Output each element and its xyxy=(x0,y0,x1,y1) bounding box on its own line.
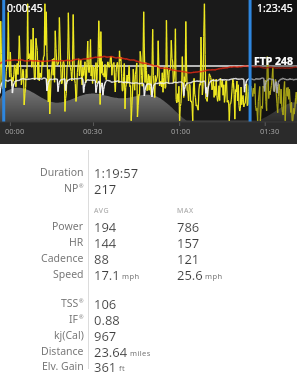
staticText: 88 xyxy=(94,250,109,266)
staticText: Power xyxy=(52,219,84,233)
staticText: 121 xyxy=(177,250,200,266)
button[interactable]: Speed xyxy=(0,266,297,282)
staticText: 00:00 xyxy=(5,126,25,136)
button[interactable]: Duration xyxy=(0,164,297,180)
staticText: 1:19:57 xyxy=(94,164,139,180)
staticText: 157 xyxy=(177,234,200,250)
staticText: 361 xyxy=(94,358,117,374)
button[interactable]: Cadence xyxy=(0,250,297,266)
staticText: mph xyxy=(205,271,223,281)
staticText: IF xyxy=(69,312,79,326)
staticText: 23.64 xyxy=(94,343,128,359)
button[interactable]: Elv. Gain xyxy=(0,358,297,374)
staticText: Duration xyxy=(40,165,84,179)
staticText: Elv. Gain xyxy=(42,359,84,373)
staticText: MAX xyxy=(177,206,194,216)
staticText: 967 xyxy=(94,327,117,343)
staticText: NP xyxy=(64,181,79,195)
staticText: 25.6 xyxy=(177,266,203,282)
staticText: ® xyxy=(79,313,84,320)
staticText: kj(Cal) xyxy=(54,328,84,342)
staticText: 0.88 xyxy=(94,311,120,327)
staticText: ft xyxy=(119,363,126,373)
staticText: Cadence xyxy=(41,251,84,265)
button[interactable]: Distance xyxy=(0,343,297,359)
staticText: 786 xyxy=(177,218,200,234)
staticText: 01:30 xyxy=(260,126,280,136)
staticText: 144 xyxy=(94,234,117,250)
staticText: TSS xyxy=(61,296,79,310)
staticText: 17.1 xyxy=(94,266,120,282)
staticText: 194 xyxy=(94,218,117,234)
staticText: HR xyxy=(69,235,84,249)
staticText: mph xyxy=(122,271,140,281)
button[interactable]: Workout power, heart rate and cadence ch… xyxy=(0,0,297,144)
staticText: ® xyxy=(79,182,84,189)
staticText: ® xyxy=(79,297,84,304)
staticText: AVG xyxy=(94,206,110,216)
staticText: FTP 248 xyxy=(254,54,294,68)
staticText: Speed xyxy=(53,267,84,281)
staticText: 0:00:45 xyxy=(7,1,43,15)
staticText: 217 xyxy=(94,180,117,196)
staticText: 01:00 xyxy=(171,126,191,136)
button[interactable]: NP xyxy=(0,180,297,196)
button[interactable]: TSS xyxy=(0,295,297,311)
button[interactable]: kj(Cal) xyxy=(0,327,297,343)
staticText: 00:30 xyxy=(83,126,103,136)
staticText: miles xyxy=(130,348,151,358)
button[interactable]: HR xyxy=(0,234,297,250)
staticText: Distance xyxy=(41,344,84,358)
staticText: 1:23:45 xyxy=(257,1,293,15)
button[interactable]: IF xyxy=(0,311,297,327)
button[interactable]: Power xyxy=(0,218,297,234)
staticText: 106 xyxy=(94,295,117,311)
